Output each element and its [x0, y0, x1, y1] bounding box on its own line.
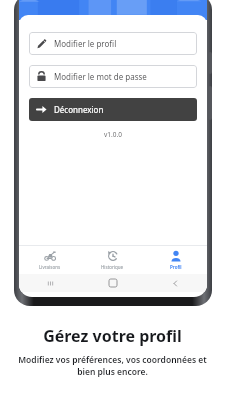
staticText: Livraisons	[39, 264, 61, 270]
staticText: Modifier le profil	[54, 38, 117, 49]
staticText: v1.0.0	[19, 130, 207, 139]
button[interactable]: Livraisons	[19, 246, 81, 274]
staticText: Profil	[170, 264, 182, 270]
button[interactable]: Recent apps	[19, 274, 81, 292]
staticText: Historique	[101, 264, 124, 270]
button[interactable]: Home	[81, 274, 144, 292]
button[interactable]: Modifier le profil	[29, 32, 197, 55]
staticText: Modifiez vos préférences, vos coordonnée…	[18, 354, 207, 378]
button[interactable]: Modifier le mot de passe	[29, 65, 197, 88]
staticText: Déconnexion	[54, 104, 104, 115]
staticText: Modifier le mot de passe	[54, 71, 147, 82]
staticText: Gérez votre profil	[43, 325, 182, 347]
button[interactable]: Profil	[144, 246, 207, 274]
button[interactable]: Historique	[81, 246, 144, 274]
button[interactable]: Déconnexion	[29, 98, 197, 121]
button[interactable]: Back	[144, 274, 207, 292]
